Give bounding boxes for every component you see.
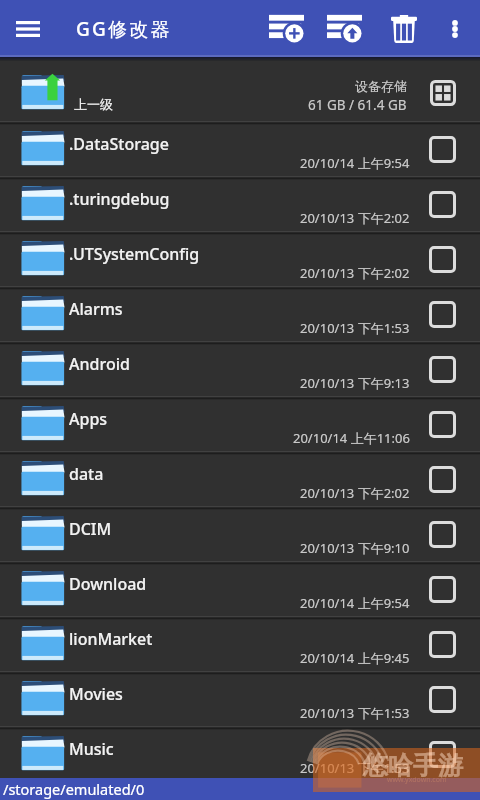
staticText: www.yxdown.com <box>387 775 447 785</box>
staticText: 20/10/13 下午2:02 <box>300 209 410 227</box>
button[interactable]: Select Alarms <box>429 301 456 328</box>
staticText: 20/10/13 下午1:53 <box>300 704 410 722</box>
staticText: lionMarket <box>69 628 153 650</box>
button[interactable]: Apps <box>0 400 480 451</box>
staticText: 20/10/13 下午1:53 <box>300 759 410 777</box>
button[interactable]: /storage/emulated/0 <box>0 778 480 800</box>
button[interactable]: 上一级 <box>0 61 480 121</box>
button[interactable]: lionMarket <box>0 620 480 671</box>
button[interactable]: Download <box>0 565 480 616</box>
button[interactable]: Select Music <box>429 741 456 768</box>
button[interactable]: Menu <box>0 0 56 57</box>
button[interactable]: data <box>0 455 480 506</box>
staticText: 20/10/14 上午9:54 <box>300 154 410 172</box>
button[interactable]: Movies <box>0 675 480 726</box>
staticText: 20/10/13 下午2:02 <box>300 484 410 502</box>
button[interactable]: .DataStorage <box>0 125 480 176</box>
staticText: Android <box>69 353 130 375</box>
staticText: Download <box>69 573 147 595</box>
button[interactable]: Upload <box>316 0 372 57</box>
staticText: 设备存储 <box>355 78 407 94</box>
button[interactable]: .turingdebug <box>0 180 480 231</box>
button[interactable]: Select DCIM <box>429 521 456 548</box>
staticText: DCIM <box>69 518 112 540</box>
button[interactable]: Select .turingdebug <box>429 191 456 218</box>
staticText: /storage/emulated/0 <box>3 779 145 799</box>
staticText: 20/10/13 下午2:02 <box>300 264 410 282</box>
button[interactable]: Delete <box>382 0 426 57</box>
staticText: Apps <box>69 408 108 430</box>
staticText: 20/10/13 下午9:10 <box>300 539 410 557</box>
staticText: 20/10/14 上午9:54 <box>300 594 410 612</box>
staticText: 61 GB / 61.4 GB <box>308 96 407 114</box>
staticText: 20/10/14 上午11:06 <box>293 429 410 447</box>
button[interactable]: Select Download <box>429 576 456 603</box>
staticText: 上一级 <box>74 96 113 112</box>
staticText: Movies <box>69 683 123 705</box>
button[interactable]: Select data <box>429 466 456 493</box>
button[interactable]: Grid view <box>430 80 456 106</box>
button[interactable]: .UTSystemConfig <box>0 235 480 286</box>
staticText: .DataStorage <box>69 133 169 155</box>
staticText: 20/10/13 下午9:13 <box>300 374 410 392</box>
staticText: 悠哈手游 <box>363 750 463 781</box>
button[interactable]: Android <box>0 345 480 396</box>
button[interactable]: Alarms <box>0 290 480 341</box>
staticText: .turingdebug <box>69 188 170 210</box>
button[interactable]: Select .DataStorage <box>429 136 456 163</box>
button[interactable]: Select Movies <box>429 686 456 713</box>
button[interactable]: Select .UTSystemConfig <box>429 246 456 273</box>
button[interactable]: New file <box>258 0 314 57</box>
button[interactable]: Select lionMarket <box>429 631 456 658</box>
staticText: 20/10/13 下午1:53 <box>300 319 410 337</box>
button[interactable]: Music <box>0 730 480 781</box>
staticText: GG修改器 <box>76 16 172 42</box>
button[interactable]: DCIM <box>0 510 480 561</box>
button[interactable]: More options <box>434 0 478 57</box>
staticText: Music <box>69 738 114 760</box>
staticText: Alarms <box>69 298 123 320</box>
button[interactable]: Select Apps <box>429 411 456 438</box>
staticText: .UTSystemConfig <box>69 243 200 265</box>
button[interactable]: Select Android <box>429 356 456 383</box>
staticText: data <box>69 463 104 485</box>
staticText: 20/10/14 上午9:45 <box>300 649 410 667</box>
